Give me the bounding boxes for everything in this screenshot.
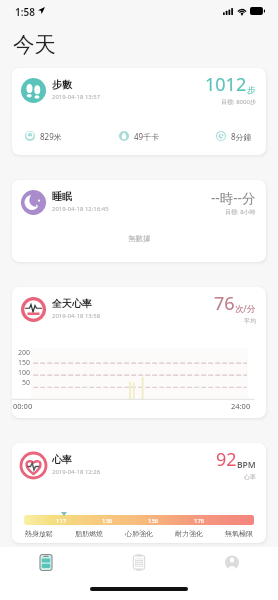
staticText: 步 [247, 85, 256, 96]
staticText: 2019-04-18 12:16:45 [52, 205, 109, 213]
staticText: 200 [18, 348, 31, 358]
staticText: 100 [18, 368, 31, 378]
staticText: 136 [102, 517, 113, 524]
staticText: 全天心率 [52, 297, 92, 310]
staticText: 1012 [205, 72, 247, 97]
staticText: 2019-04-18 13:58 [52, 312, 101, 320]
staticText: 00:00 [13, 401, 33, 411]
staticText: 2019-04-18 12:26 [52, 468, 101, 476]
staticText: 耐力強化 [175, 529, 203, 538]
staticText: --時--分 [211, 189, 256, 207]
staticText: 49千卡 [134, 131, 160, 141]
staticText: 目標: 8000步 [221, 98, 256, 106]
staticText: 24:00 [231, 401, 251, 411]
staticText: 2019-04-18 13:57 [52, 93, 101, 101]
staticText: 76 [214, 291, 235, 316]
staticText: 今天 [13, 31, 56, 58]
button[interactable]: Records [118, 548, 160, 576]
staticText: 117 [56, 517, 67, 524]
staticText: 50 [22, 378, 31, 388]
staticText: 無數據 [128, 234, 151, 243]
staticText: 829米 [40, 131, 62, 141]
button[interactable]: Profile [211, 548, 253, 576]
staticText: 睡眠 [52, 190, 72, 203]
button[interactable]: 心率 [12, 443, 266, 543]
button[interactable]: 全天心率 [12, 287, 266, 418]
staticText: 92 [216, 447, 237, 472]
staticText: 150 [18, 358, 31, 368]
button[interactable]: 睡眠 [12, 180, 266, 262]
button[interactable]: Today [25, 548, 67, 576]
staticText: 心肺強化 [125, 529, 153, 538]
staticText: 心率 [52, 453, 72, 466]
button[interactable]: 步數 [12, 68, 266, 155]
staticText: 心率 [244, 473, 256, 481]
staticText: 平均 [244, 317, 256, 325]
staticText: 8分鐘 [231, 131, 252, 141]
staticText: 176 [194, 517, 205, 524]
staticText: 無氧極限 [225, 529, 253, 538]
staticText: 熱身放鬆 [25, 529, 53, 538]
staticText: 156 [148, 517, 159, 524]
staticText: 1:58 [15, 5, 35, 19]
staticText: 次/分 [235, 303, 256, 315]
staticText: 目標: 8小時 [225, 208, 256, 216]
staticText: 脂肪燃燒 [75, 529, 103, 538]
staticText: BPM [237, 459, 256, 471]
staticText: 步數 [52, 78, 72, 91]
